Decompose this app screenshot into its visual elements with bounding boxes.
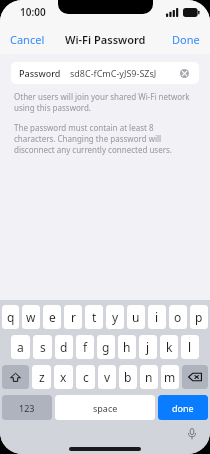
button[interactable]: e — [43, 305, 61, 329]
button[interactable]: Backspace — [182, 365, 208, 389]
button[interactable]: d — [55, 335, 73, 359]
staticText: t — [92, 309, 97, 325]
button[interactable]: m — [161, 365, 179, 389]
button[interactable]: q — [2, 305, 19, 329]
staticText: Wi-Fi Password — [65, 32, 146, 47]
staticText: sd8C-fCmC-yJS9-SZsJ — [70, 67, 157, 79]
button[interactable]: k — [160, 335, 178, 359]
staticText: Password — [19, 67, 61, 79]
staticText: space — [93, 402, 118, 414]
staticText: j — [146, 339, 150, 355]
button[interactable]: w — [22, 305, 40, 329]
staticText: s — [40, 339, 46, 355]
staticText: p — [195, 309, 203, 325]
button[interactable]: o — [169, 305, 187, 329]
button[interactable]: f — [76, 335, 94, 359]
staticText: 10:00 — [20, 5, 46, 19]
staticText: k — [166, 339, 173, 355]
staticText: x — [60, 369, 67, 385]
staticText: g — [102, 339, 110, 355]
button[interactable]: Dictate — [185, 427, 199, 441]
button[interactable]: Password — [11, 62, 199, 84]
staticText: i — [155, 309, 159, 325]
button[interactable]: v — [98, 365, 116, 389]
staticText: Other users will join your shared Wi-Fi … — [14, 91, 196, 113]
button[interactable]: 123 — [2, 395, 52, 420]
staticText: f — [83, 339, 88, 355]
staticText: l — [188, 339, 192, 355]
staticText: The password must contain at least 8 cha… — [14, 122, 196, 155]
staticText: z — [39, 369, 45, 385]
staticText: Cancel — [10, 32, 45, 47]
button[interactable]: p — [190, 305, 208, 329]
staticText: v — [104, 369, 111, 385]
button[interactable]: Clear text — [178, 67, 191, 80]
button[interactable]: y — [106, 305, 124, 329]
button[interactable]: l — [181, 335, 199, 359]
button[interactable]: Done — [162, 27, 210, 52]
staticText: w — [26, 309, 36, 325]
button[interactable]: done — [158, 395, 208, 420]
staticText: u — [132, 309, 140, 325]
button[interactable]: s — [33, 335, 52, 359]
button[interactable]: g — [97, 335, 115, 359]
button[interactable]: u — [127, 305, 145, 329]
button[interactable]: x — [54, 365, 73, 389]
button[interactable]: n — [140, 365, 158, 389]
button[interactable]: j — [139, 335, 157, 359]
staticText: h — [123, 339, 131, 355]
staticText: e — [49, 309, 56, 325]
staticText: m — [164, 369, 176, 385]
staticText: a — [17, 339, 24, 355]
button[interactable]: t — [85, 305, 103, 329]
button[interactable]: a — [11, 335, 30, 359]
button[interactable]: h — [118, 335, 136, 359]
button[interactable]: Shift — [2, 365, 29, 389]
staticText: b — [124, 369, 132, 385]
button[interactable]: Cancel — [0, 27, 55, 52]
staticText: c — [83, 369, 89, 385]
staticText: done — [172, 402, 194, 414]
staticText: q — [7, 309, 15, 325]
button[interactable]: r — [64, 305, 82, 329]
staticText: o — [174, 309, 182, 325]
staticText: d — [60, 339, 68, 355]
staticText: 123 — [19, 402, 35, 414]
button[interactable]: i — [148, 305, 166, 329]
staticText: y — [112, 309, 119, 325]
button[interactable]: space — [55, 395, 155, 420]
button[interactable]: b — [119, 365, 137, 389]
staticText: Done — [172, 32, 200, 47]
button[interactable]: c — [76, 365, 95, 389]
button[interactable]: z — [32, 365, 51, 389]
staticText: n — [145, 369, 153, 385]
staticText: r — [71, 309, 76, 325]
